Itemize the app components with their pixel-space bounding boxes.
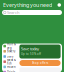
staticText: Search [7, 10, 19, 15]
staticText: Fruit & veg [7, 43, 16, 50]
button[interactable]: Fruit & veg [2, 43, 18, 49]
button[interactable]: Dairy [2, 54, 18, 59]
button[interactable]: Shop offers [19, 60, 61, 66]
staticText: Frozen [7, 65, 16, 69]
staticText: Bakery [7, 49, 15, 53]
button[interactable]: Search [0, 10, 64, 15]
staticText: Everything you need [3, 1, 52, 9]
button[interactable]: Meat & fish [2, 59, 18, 64]
button[interactable]: Account [57, 3, 61, 7]
staticText: Shop offers [32, 61, 48, 65]
staticText: Dairy [7, 55, 13, 58]
staticText: Save today [21, 46, 39, 51]
staticText: Up to 50% off [21, 52, 41, 56]
staticText: Meat & fish [7, 58, 16, 65]
button[interactable]: Drinks [2, 69, 18, 72]
button[interactable]: Frozen [2, 64, 18, 69]
button[interactable]: Bakery [2, 49, 18, 54]
staticText: Drinks [7, 70, 15, 72]
